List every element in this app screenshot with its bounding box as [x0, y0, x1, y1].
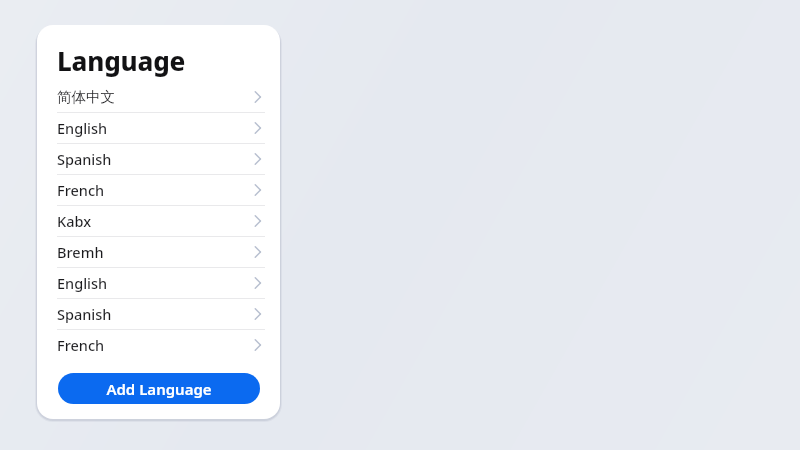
- staticText: Spanish: [57, 149, 112, 169]
- button[interactable]: French: [37, 330, 280, 360]
- staticText: Language: [57, 43, 186, 78]
- other: Open: [253, 183, 261, 197]
- other: Open: [253, 338, 261, 352]
- staticText: French: [57, 335, 105, 355]
- other: Open: [253, 276, 261, 290]
- staticText: Bremh: [57, 242, 104, 262]
- button[interactable]: Spanish: [37, 299, 280, 329]
- staticText: English: [57, 273, 108, 293]
- staticText: French: [57, 180, 105, 200]
- button[interactable]: Spanish: [37, 144, 280, 174]
- staticText: 简体中文: [57, 88, 115, 106]
- staticText: Spanish: [57, 304, 112, 324]
- other: Open: [253, 245, 261, 259]
- staticText: Add Language: [106, 379, 212, 399]
- other: Open: [253, 152, 261, 166]
- staticText: English: [57, 118, 108, 138]
- other: Open: [253, 214, 261, 228]
- other: Open: [253, 90, 261, 104]
- button[interactable]: 简体中文: [37, 82, 280, 112]
- button[interactable]: Kabx: [37, 206, 280, 236]
- button[interactable]: French: [37, 175, 280, 205]
- button[interactable]: Add Language: [58, 373, 260, 404]
- button[interactable]: Bremh: [37, 237, 280, 267]
- button[interactable]: English: [37, 268, 280, 298]
- other: Open: [253, 307, 261, 321]
- button[interactable]: English: [37, 113, 280, 143]
- staticText: Kabx: [57, 211, 92, 231]
- other: Open: [253, 121, 261, 135]
